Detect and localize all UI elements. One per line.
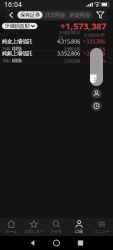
- staticText: +242,606: [83, 50, 105, 57]
- staticText: 4,315,806: [57, 38, 80, 45]
- staticText: ホーム: [5, 229, 17, 234]
- staticText: 特定: [13, 46, 21, 51]
- staticText: +7.32%: [93, 58, 105, 64]
- button[interactable]: 評価損益順: [2, 23, 37, 29]
- staticText: 保有証券: [20, 12, 40, 18]
- staticText: 評価損益順: [5, 23, 30, 29]
- staticText: 純銀上場信託: [2, 50, 32, 57]
- staticText: 3,552,806: [57, 50, 80, 57]
- staticText: お気に入り: [24, 229, 44, 234]
- staticText: 3,310,200: [64, 58, 80, 64]
- button[interactable]: お気に入り: [23, 218, 45, 236]
- staticText: 1540: [2, 46, 10, 51]
- button[interactable]: 口座情報: [91, 88, 101, 98]
- staticText: 約定照会: [70, 12, 90, 18]
- button[interactable]: 絞り込み: [93, 9, 107, 21]
- staticText: 口座: [75, 229, 83, 234]
- staticText: +335,386: [83, 38, 105, 45]
- staticText: 純金上場信託: [2, 38, 32, 45]
- button[interactable]: 注文照会: [42, 11, 67, 19]
- button[interactable]: 純金上場信託: [0, 39, 113, 51]
- button[interactable]: 純銀上場信託: [0, 51, 113, 63]
- staticText: 評価損益/率: [84, 32, 105, 38]
- button[interactable]: 約定照会: [67, 11, 92, 19]
- button[interactable]: 戻る: [20, 236, 44, 250]
- staticText: 注文照会: [45, 12, 65, 18]
- staticText: +8.42%: [93, 46, 105, 52]
- staticText: 特定: [13, 58, 21, 63]
- button[interactable]: 表示切替: [90, 48, 103, 86]
- button[interactable]: メニュー: [90, 218, 113, 236]
- staticText: 3,980,420: [64, 46, 80, 52]
- staticText: さがす: [50, 229, 62, 234]
- staticText: 1542: [2, 58, 10, 63]
- button[interactable]: 保有証券: [17, 11, 42, 19]
- button[interactable]: 履歴: [68, 236, 92, 250]
- button[interactable]: さがす: [45, 218, 68, 236]
- button[interactable]: 戻る: [6, 9, 17, 21]
- button[interactable]: 履歴: [91, 101, 101, 111]
- staticText: 16:04: [4, 0, 22, 9]
- button[interactable]: 口座: [68, 218, 90, 236]
- staticText: メニュー: [94, 229, 110, 234]
- staticText: +1,573,387: [60, 20, 106, 32]
- button[interactable]: ホーム: [44, 236, 68, 250]
- button[interactable]: ホーム: [0, 218, 23, 236]
- staticText: 評価額/取得額: [59, 30, 80, 40]
